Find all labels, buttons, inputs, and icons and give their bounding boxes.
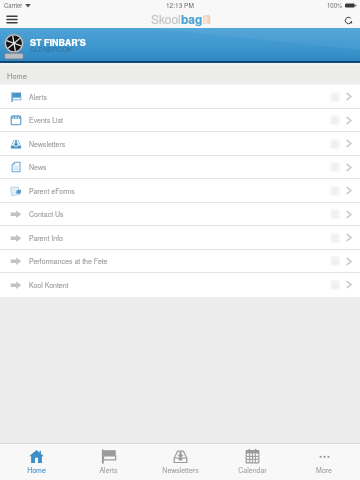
button[interactable]: Calendar — [216, 444, 288, 480]
staticText: Home — [7, 70, 28, 81]
staticText: bag — [181, 10, 203, 27]
button[interactable]: Newsletters — [144, 444, 216, 480]
staticText: Home — [27, 465, 46, 475]
button[interactable]: Home — [0, 444, 72, 480]
staticText: Events List — [29, 115, 64, 125]
staticText: More — [316, 465, 332, 475]
staticText: GLENBROOK — [30, 45, 72, 54]
staticText: Kool Kontent — [29, 280, 69, 290]
button[interactable]: Newsletters — [0, 132, 360, 156]
button[interactable]: Kool Kontent — [0, 273, 360, 297]
button[interactable]: Alerts — [0, 85, 360, 109]
staticText: Alerts — [29, 92, 48, 102]
staticText: 0 — [333, 280, 337, 290]
staticText: 0 — [333, 92, 337, 102]
staticText: 0 — [333, 139, 337, 149]
button[interactable]: More — [288, 444, 360, 480]
button[interactable]: Events List — [0, 109, 360, 132]
button[interactable]: Refresh — [340, 12, 356, 28]
staticText: Skool — [151, 10, 181, 27]
staticText: Calendar — [238, 465, 267, 475]
button[interactable]: Alerts — [72, 444, 144, 480]
staticText: Newsletters — [162, 465, 199, 475]
staticText: 100% — [327, 1, 343, 10]
staticText: Carrier — [4, 1, 23, 10]
staticText: 0 — [333, 115, 337, 125]
staticText: 0 — [333, 186, 337, 196]
button[interactable]: Parent Info — [0, 226, 360, 250]
staticText: Parent Info — [29, 233, 63, 243]
staticText: Parent eForms — [29, 186, 75, 196]
staticText: 0 — [333, 256, 337, 266]
staticText: 0 — [333, 162, 337, 172]
button[interactable]: Parent eForms — [0, 179, 360, 203]
staticText: 0 — [333, 233, 337, 243]
button[interactable]: Contact Us — [0, 203, 360, 226]
staticText: Newsletters — [29, 139, 66, 149]
staticText: News — [29, 162, 47, 172]
staticText: Alerts — [99, 465, 118, 475]
button[interactable]: News — [0, 156, 360, 179]
staticText: 12:13 PM — [166, 1, 194, 10]
staticText: ST FINBAR'S — [30, 36, 86, 49]
staticText: Contact Us — [29, 209, 64, 219]
button[interactable]: Performances at the Fete — [0, 250, 360, 273]
staticText: Performances at the Fete — [29, 256, 108, 266]
staticText: 0 — [333, 209, 337, 219]
button[interactable]: Menu — [3, 11, 21, 27]
